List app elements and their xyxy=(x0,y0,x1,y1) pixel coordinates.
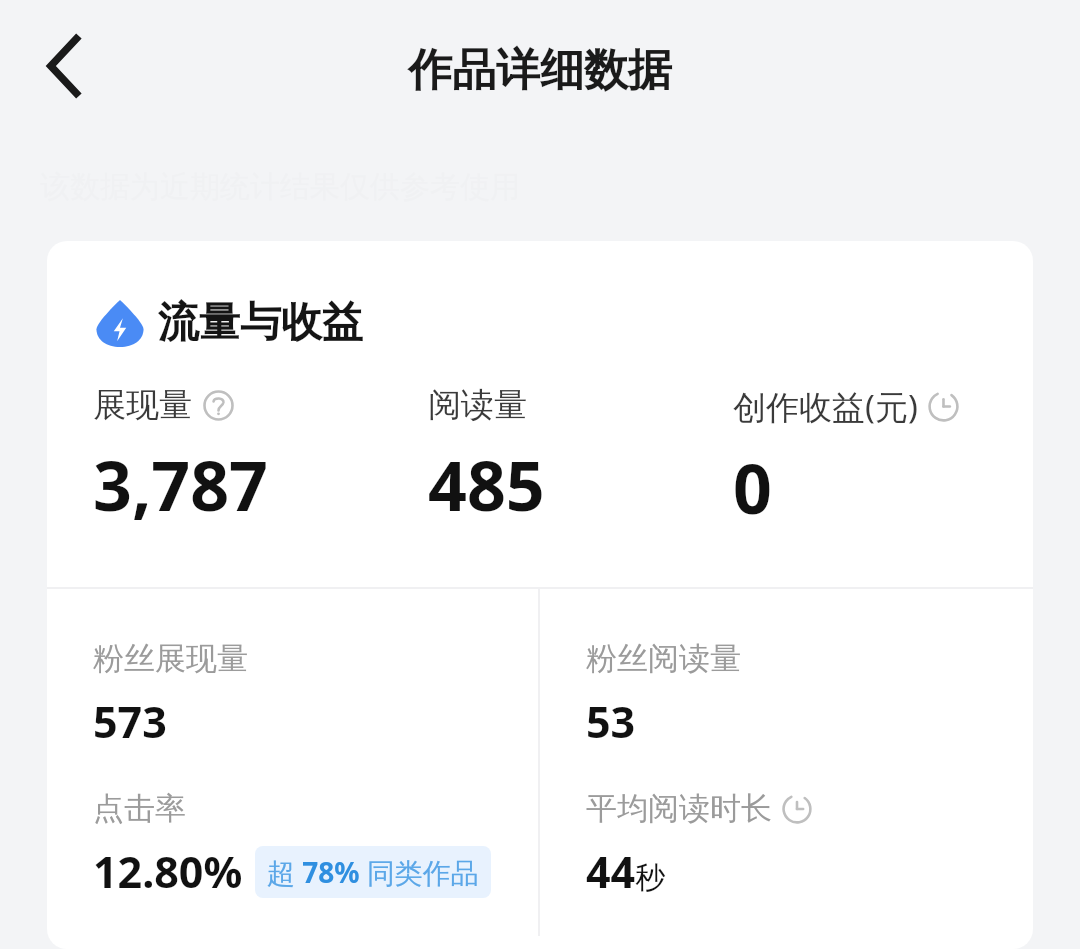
button[interactable]: 平均阅读时长 xyxy=(586,789,812,901)
button[interactable]: Back xyxy=(16,22,112,110)
staticText: 点击率 xyxy=(93,789,186,828)
button[interactable]: 阅读量 xyxy=(428,384,545,531)
staticText: 0 xyxy=(733,441,772,534)
staticText: 流量与收益 xyxy=(158,297,363,349)
staticText: 粉丝展现量 xyxy=(93,639,248,678)
button[interactable]: 粉丝展现量 xyxy=(93,639,248,751)
staticText: 12.80% xyxy=(93,842,243,901)
button[interactable]: 粉丝阅读量 xyxy=(586,639,741,751)
staticText: 485 xyxy=(428,438,545,531)
staticText: 粉丝阅读量 xyxy=(586,639,741,678)
button[interactable]: 超 78% 同类作品 xyxy=(267,853,479,891)
button[interactable]: 创作收益(元) xyxy=(733,384,959,534)
staticText: 阅读量 xyxy=(428,384,527,426)
staticText: 平均阅读时长 xyxy=(586,789,772,828)
button[interactable]: 展现量 xyxy=(93,384,268,531)
staticText: 超 78% 同类作品 xyxy=(267,853,479,891)
staticText: 44秒 xyxy=(586,842,666,901)
staticText: 53 xyxy=(586,692,636,751)
staticText: 3,787 xyxy=(93,438,268,531)
staticText: 创作收益(元) xyxy=(733,384,918,429)
button[interactable]: 点击率 xyxy=(93,789,491,901)
button[interactable]: 流量与收益 xyxy=(96,297,363,349)
staticText: 展现量 xyxy=(93,384,192,426)
staticText: 作品详细数据 xyxy=(408,43,672,98)
staticText: 573 xyxy=(93,692,167,751)
